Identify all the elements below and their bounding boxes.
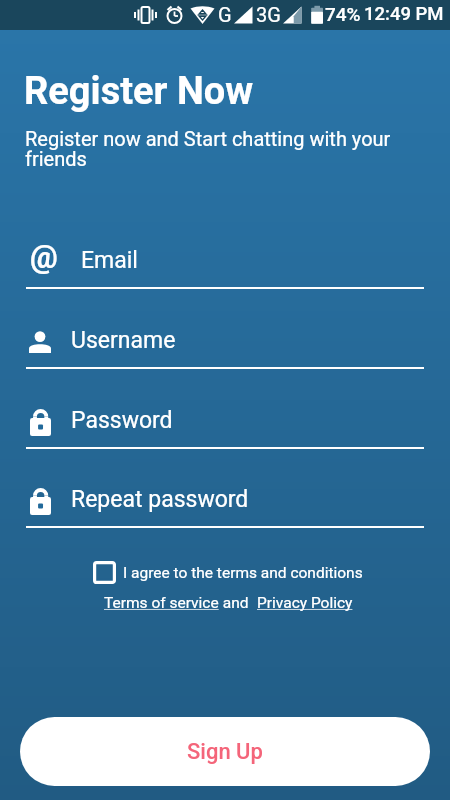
staticText: Username xyxy=(71,327,176,354)
staticText: Password xyxy=(71,407,173,434)
button[interactable]: Password xyxy=(26,400,424,450)
button[interactable]: Sign Up xyxy=(20,717,430,786)
button[interactable]: @ xyxy=(26,240,424,290)
staticText: Register now and Start chatting with you… xyxy=(25,127,397,171)
staticText: 12:49 PM xyxy=(364,3,444,25)
staticText: 74% xyxy=(325,3,361,25)
staticText: 3G xyxy=(256,3,281,26)
staticText: G xyxy=(218,3,232,26)
staticText: Repeat password xyxy=(71,486,249,513)
staticText: and xyxy=(219,594,257,612)
button[interactable]: Privacy Policy xyxy=(257,594,353,612)
other: Agree to terms checkbox xyxy=(93,561,116,584)
button[interactable]: Agree to terms checkbox xyxy=(93,561,363,584)
button[interactable]: Username xyxy=(26,320,424,370)
button[interactable]: Repeat password xyxy=(26,479,424,529)
staticText: Sign Up xyxy=(187,739,263,765)
staticText: I agree to the terms and conditions xyxy=(123,564,363,582)
staticText: Register Now xyxy=(24,69,254,114)
staticText: @ xyxy=(30,239,58,275)
staticText: Email xyxy=(81,247,138,274)
button[interactable]: Terms of service xyxy=(104,594,219,612)
